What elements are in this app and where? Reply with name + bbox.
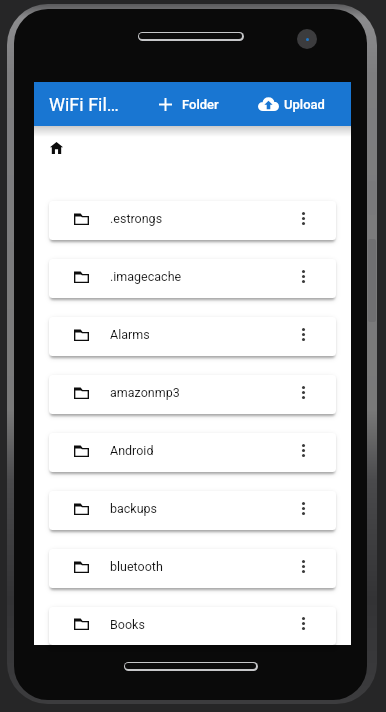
staticText: .imagecache: [110, 269, 182, 284]
button[interactable]: Android: [49, 433, 336, 472]
button[interactable]: Alarms: [49, 317, 336, 356]
button[interactable]: More options: [292, 439, 314, 461]
button[interactable]: Books: [49, 607, 336, 645]
button[interactable]: More options: [292, 381, 314, 403]
button[interactable]: Home: [43, 135, 69, 161]
staticText: Books: [110, 617, 145, 632]
staticText: backups: [110, 501, 158, 516]
staticText: .estrongs: [110, 211, 163, 226]
staticText: bluetooth: [110, 559, 163, 574]
staticText: WiFi Fil…: [49, 94, 119, 115]
button[interactable]: More options: [292, 265, 314, 287]
staticText: Alarms: [110, 327, 150, 342]
staticText: amazonmp3: [110, 385, 180, 400]
button[interactable]: More options: [292, 323, 314, 345]
staticText: Folder: [182, 97, 219, 112]
staticText: Upload: [284, 97, 325, 112]
button[interactable]: backups: [49, 491, 336, 530]
staticText: Android: [110, 443, 154, 458]
button[interactable]: More options: [292, 497, 314, 519]
button[interactable]: amazonmp3: [49, 375, 336, 414]
button[interactable]: Upload: [252, 82, 331, 126]
button[interactable]: More options: [292, 555, 314, 577]
button[interactable]: More options: [292, 612, 314, 634]
button[interactable]: .estrongs: [49, 201, 336, 240]
button[interactable]: More options: [292, 207, 314, 229]
button[interactable]: .imagecache: [49, 259, 336, 298]
button[interactable]: bluetooth: [49, 549, 336, 588]
button[interactable]: Folder: [153, 82, 225, 126]
